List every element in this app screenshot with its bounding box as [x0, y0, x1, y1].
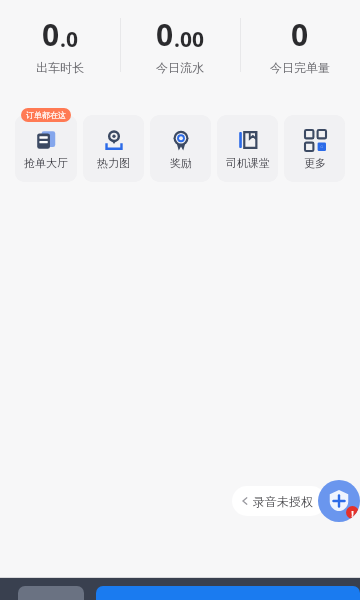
- button[interactable]: 热力图: [83, 115, 144, 182]
- staticText: 司机课堂: [226, 156, 270, 170]
- staticText: 抢单大厅: [24, 156, 68, 170]
- staticText: 0: [291, 14, 309, 55]
- button[interactable]: 抢单大厅: [15, 115, 77, 182]
- button[interactable]: 任务卡片: [18, 586, 84, 600]
- staticText: .0: [60, 25, 78, 54]
- button[interactable]: 录音未授权: [232, 486, 326, 516]
- staticText: !: [351, 507, 354, 519]
- button[interactable]: 0: [240, 0, 360, 88]
- staticText: 热力图: [97, 156, 130, 170]
- button[interactable]: 0: [0, 0, 120, 88]
- button[interactable]: 当前任务: [96, 586, 360, 600]
- staticText: .00: [174, 25, 204, 54]
- button[interactable]: 安全中心: [318, 480, 360, 522]
- button[interactable]: 司机课堂: [217, 115, 278, 182]
- staticText: 今日流水: [156, 60, 204, 75]
- button[interactable]: 奖励: [150, 115, 211, 182]
- staticText: 0: [156, 14, 174, 55]
- button[interactable]: 0: [120, 0, 240, 88]
- staticText: 0: [42, 14, 60, 55]
- staticText: 今日完单量: [270, 60, 330, 75]
- staticText: 录音未授权: [253, 494, 313, 509]
- staticText: 更多: [304, 156, 326, 170]
- staticText: 奖励: [170, 156, 192, 170]
- staticText: 出车时长: [36, 60, 84, 75]
- button[interactable]: 更多: [284, 115, 345, 182]
- staticText: 订单都在这: [26, 110, 66, 120]
